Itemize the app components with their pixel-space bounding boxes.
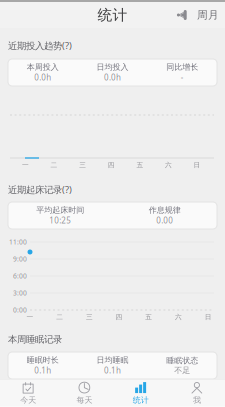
button[interactable]: 每天 (56, 379, 112, 406)
staticText: 四 (116, 313, 123, 321)
staticText: 睡眠时长 (27, 355, 59, 365)
staticText: 四 (108, 161, 115, 169)
staticText: 每天 (76, 395, 92, 405)
staticText: 6:00 (13, 272, 27, 280)
staticText: 三 (86, 313, 93, 321)
staticText: 二 (51, 161, 58, 169)
staticText: 不足 (174, 365, 190, 375)
staticText: 五 (136, 161, 143, 169)
staticText: 0:00 (13, 306, 27, 314)
staticText: 0.1h (34, 365, 51, 376)
staticText: 本周睡眠记录 (8, 334, 62, 345)
staticText: 统计 (133, 395, 149, 405)
staticText: 10:25 (49, 215, 71, 226)
button[interactable]: 我 (169, 379, 225, 406)
staticText: 日均睡眠 (96, 355, 128, 365)
staticText: 日均投入 (96, 62, 128, 72)
staticText: 作息规律 (149, 205, 181, 215)
staticText: 近期起床记录(?) (8, 183, 72, 196)
staticText: 同比增长 (166, 62, 198, 72)
staticText: 一 (26, 313, 33, 321)
button[interactable]: 统计 (112, 379, 169, 406)
staticText: 六 (175, 313, 182, 321)
staticText: - (181, 72, 184, 83)
staticText: 0.0h (104, 72, 121, 83)
staticText: 今天 (20, 395, 36, 405)
button[interactable]: 周月 (194, 2, 222, 28)
staticText: 0.0h (34, 72, 51, 83)
staticText: 9:00 (13, 255, 27, 263)
staticText: 三 (79, 161, 86, 169)
staticText: 统计 (97, 6, 127, 24)
staticText: 平均起床时间 (36, 205, 84, 215)
staticText: 睡眠状态 (166, 356, 198, 365)
staticText: 一 (22, 161, 29, 169)
staticText: 二 (56, 313, 63, 321)
staticText: 我 (193, 395, 201, 405)
staticText: 本周投入 (27, 62, 59, 72)
staticText: 日 (205, 313, 212, 321)
staticText: 日 (194, 161, 201, 169)
staticText: 3:00 (13, 289, 27, 297)
staticText: 近期投入趋势(?) (8, 39, 72, 52)
staticText: 五 (145, 313, 152, 321)
button[interactable]: 今天 (0, 379, 56, 406)
staticText: 六 (165, 161, 172, 169)
button[interactable]: 分享 (170, 2, 194, 28)
staticText: 0.1h (104, 365, 121, 376)
staticText: 11:00 (9, 238, 27, 246)
staticText: 0.00 (156, 215, 173, 226)
staticText: 周月 (197, 8, 219, 21)
